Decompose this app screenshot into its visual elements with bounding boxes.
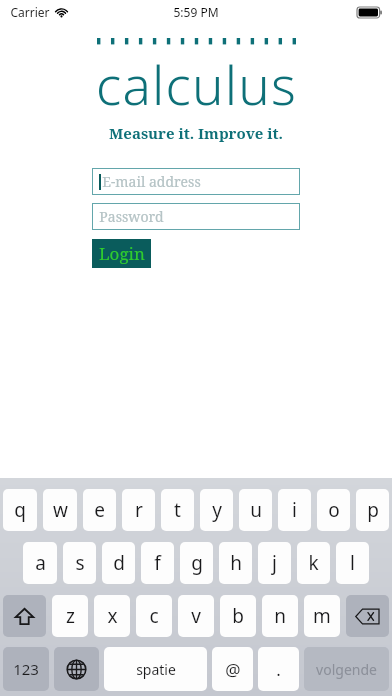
button[interactable]: v [178,595,214,637]
button[interactable]: q [3,489,37,531]
staticText: @ [225,658,241,681]
button[interactable]: spatie [104,647,207,691]
staticText: e [94,497,105,523]
staticText: b [232,603,244,629]
staticText: volgende [316,660,377,679]
button[interactable]: r [122,489,155,531]
staticText: Carrier [10,4,50,20]
button[interactable]: Shift [3,595,46,637]
button[interactable]: y [200,489,233,531]
button[interactable]: l [336,542,369,584]
staticText: c [149,603,159,629]
button[interactable]: z [52,595,88,637]
staticText: calculus [96,48,297,120]
button[interactable]: d [102,542,135,584]
staticText: u [250,497,262,523]
button[interactable]: i [278,489,311,531]
button[interactable]: o [317,489,350,531]
staticText: y [212,497,222,523]
button[interactable]: m [304,595,340,637]
button[interactable]: w [43,489,77,531]
staticText: z [66,603,75,629]
staticText: r [135,497,143,523]
button[interactable]: x [94,595,130,637]
staticText: Password [99,207,164,226]
staticText: x [107,603,118,629]
staticText: n [274,603,286,629]
staticText: h [230,550,242,576]
button[interactable]: p [356,489,389,531]
staticText: a [35,550,46,576]
button[interactable]: Delete [346,595,389,637]
staticText: v [191,603,201,629]
staticText: i [292,497,297,523]
staticText: l [350,550,355,576]
button[interactable]: f [141,542,174,584]
button[interactable]: g [180,542,213,584]
staticText: f [154,550,161,576]
button[interactable]: Password [92,203,300,230]
staticText: Login [99,242,145,265]
staticText: s [75,550,85,576]
button[interactable]: b [220,595,256,637]
staticText: p [367,497,379,523]
staticText: o [328,497,340,523]
staticText: 5:59 PM [173,4,219,20]
staticText: E-mail address [102,172,201,191]
staticText: d [113,550,125,576]
button[interactable]: e [83,489,116,531]
button[interactable]: n [262,595,298,637]
staticText: spatie [136,660,176,679]
staticText: Measure it. Improve it. [109,123,283,143]
button[interactable]: k [297,542,330,584]
staticText: . [276,658,281,681]
button[interactable]: 123 [3,647,49,691]
button[interactable]: volgende [304,647,389,691]
button[interactable]: s [63,542,96,584]
staticText: 123 [13,659,39,679]
staticText: q [14,497,26,523]
button[interactable]: t [161,489,194,531]
button[interactable]: @ [212,647,253,691]
button[interactable]: E-mail address [92,168,300,195]
button[interactable]: h [219,542,252,584]
button[interactable]: Login [92,239,151,268]
button[interactable]: c [136,595,172,637]
button[interactable]: . [258,647,299,691]
staticText: t [174,497,181,523]
staticText: g [191,550,203,576]
staticText: k [308,550,319,576]
staticText: w [53,497,68,523]
button[interactable]: u [239,489,272,531]
staticText: j [272,550,277,576]
button[interactable]: a [23,542,57,584]
button[interactable]: j [258,542,291,584]
staticText: m [313,603,331,629]
button[interactable]: Switch keyboard [54,647,99,691]
